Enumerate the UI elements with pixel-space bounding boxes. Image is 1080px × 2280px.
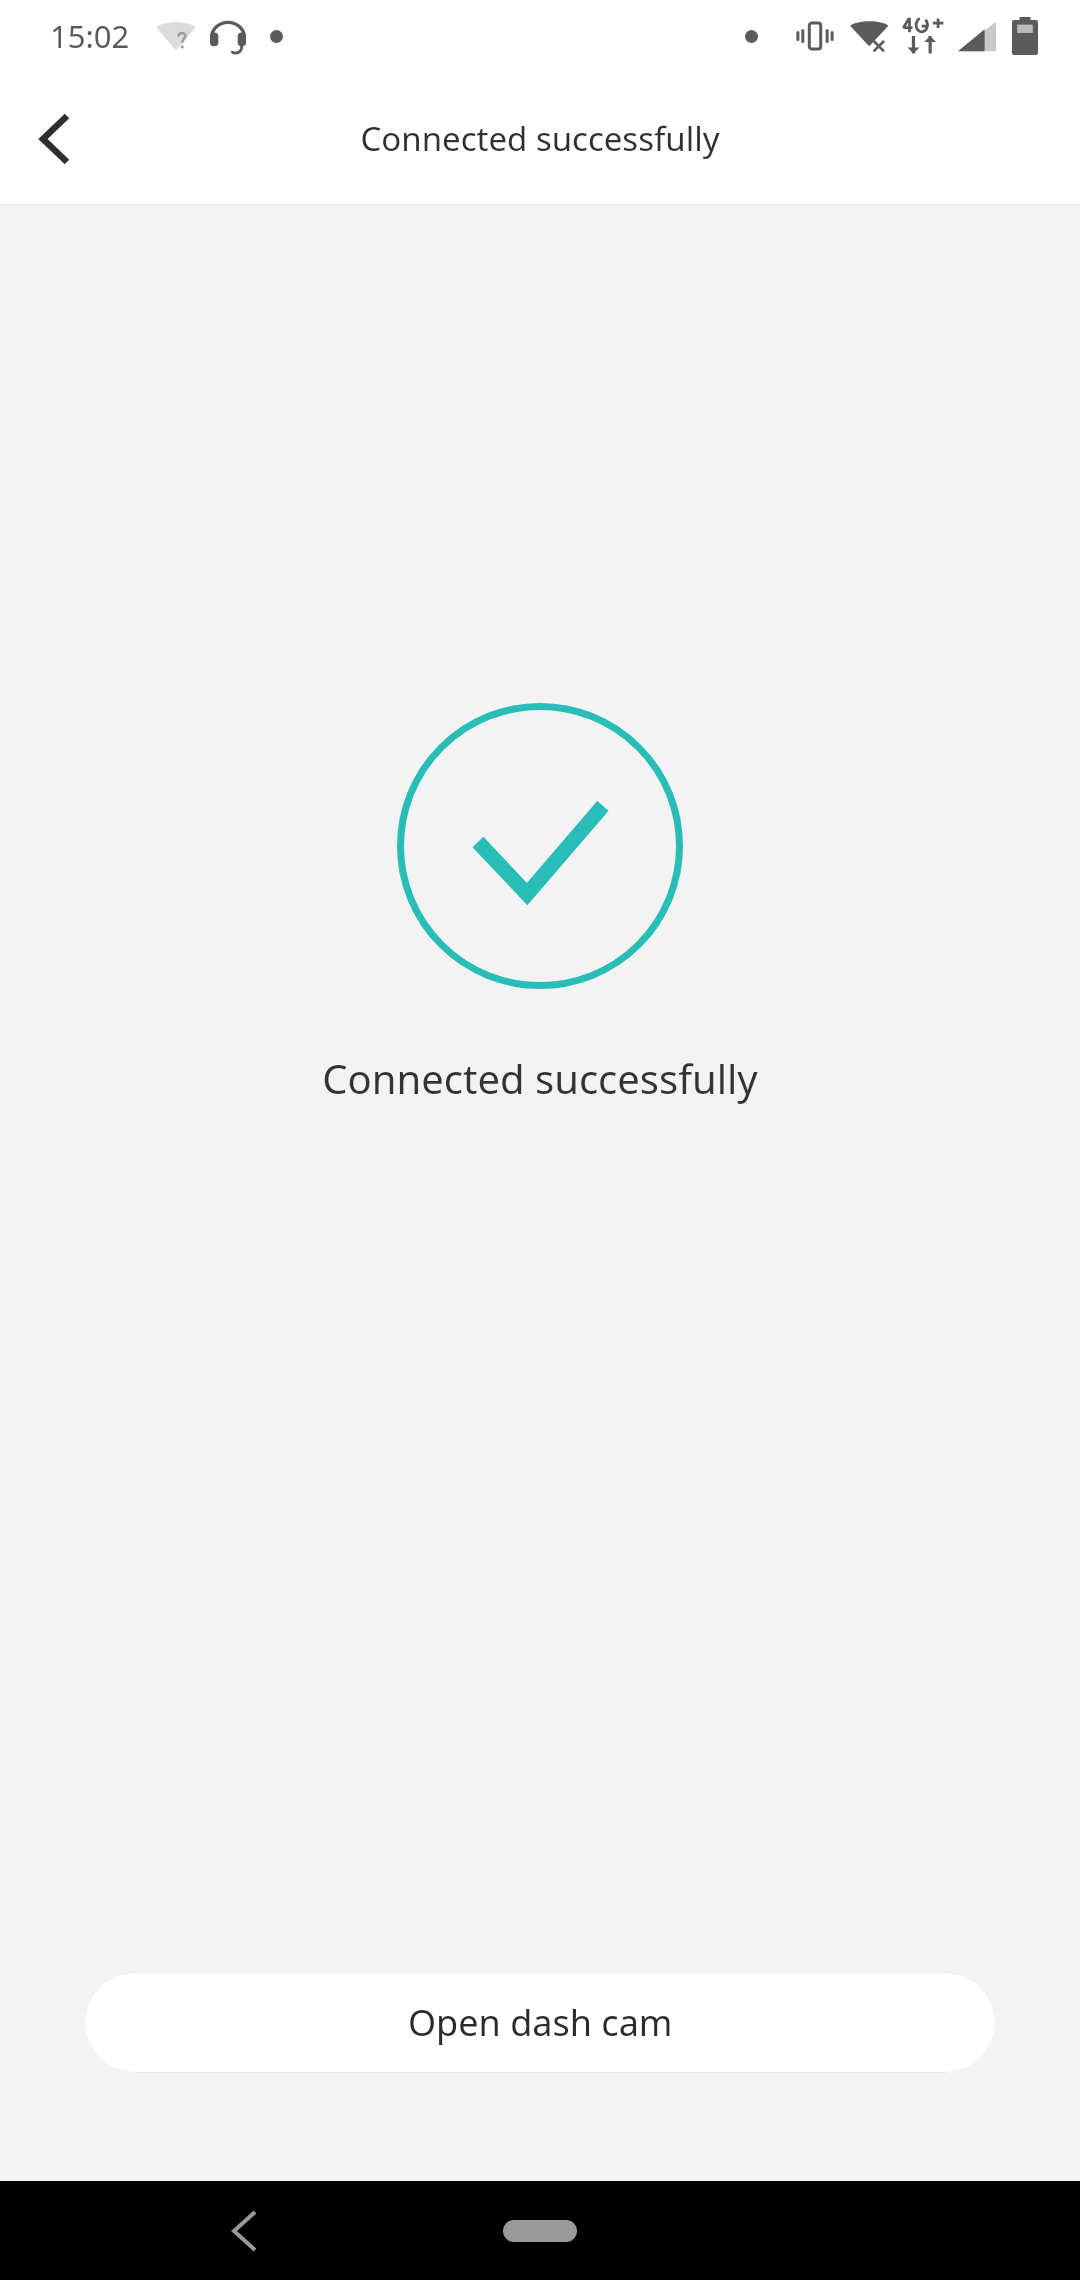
staticText: Connected successfully xyxy=(360,116,720,161)
staticText: Open dash cam xyxy=(408,1998,673,2047)
button[interactable]: Open dash cam xyxy=(84,1972,996,2073)
button[interactable]: Back xyxy=(198,2185,290,2277)
staticText: Connected successfully xyxy=(322,1051,758,1105)
button[interactable]: Home xyxy=(503,2220,577,2242)
button[interactable]: Back xyxy=(12,97,96,181)
staticText: 15:02 xyxy=(50,15,130,57)
